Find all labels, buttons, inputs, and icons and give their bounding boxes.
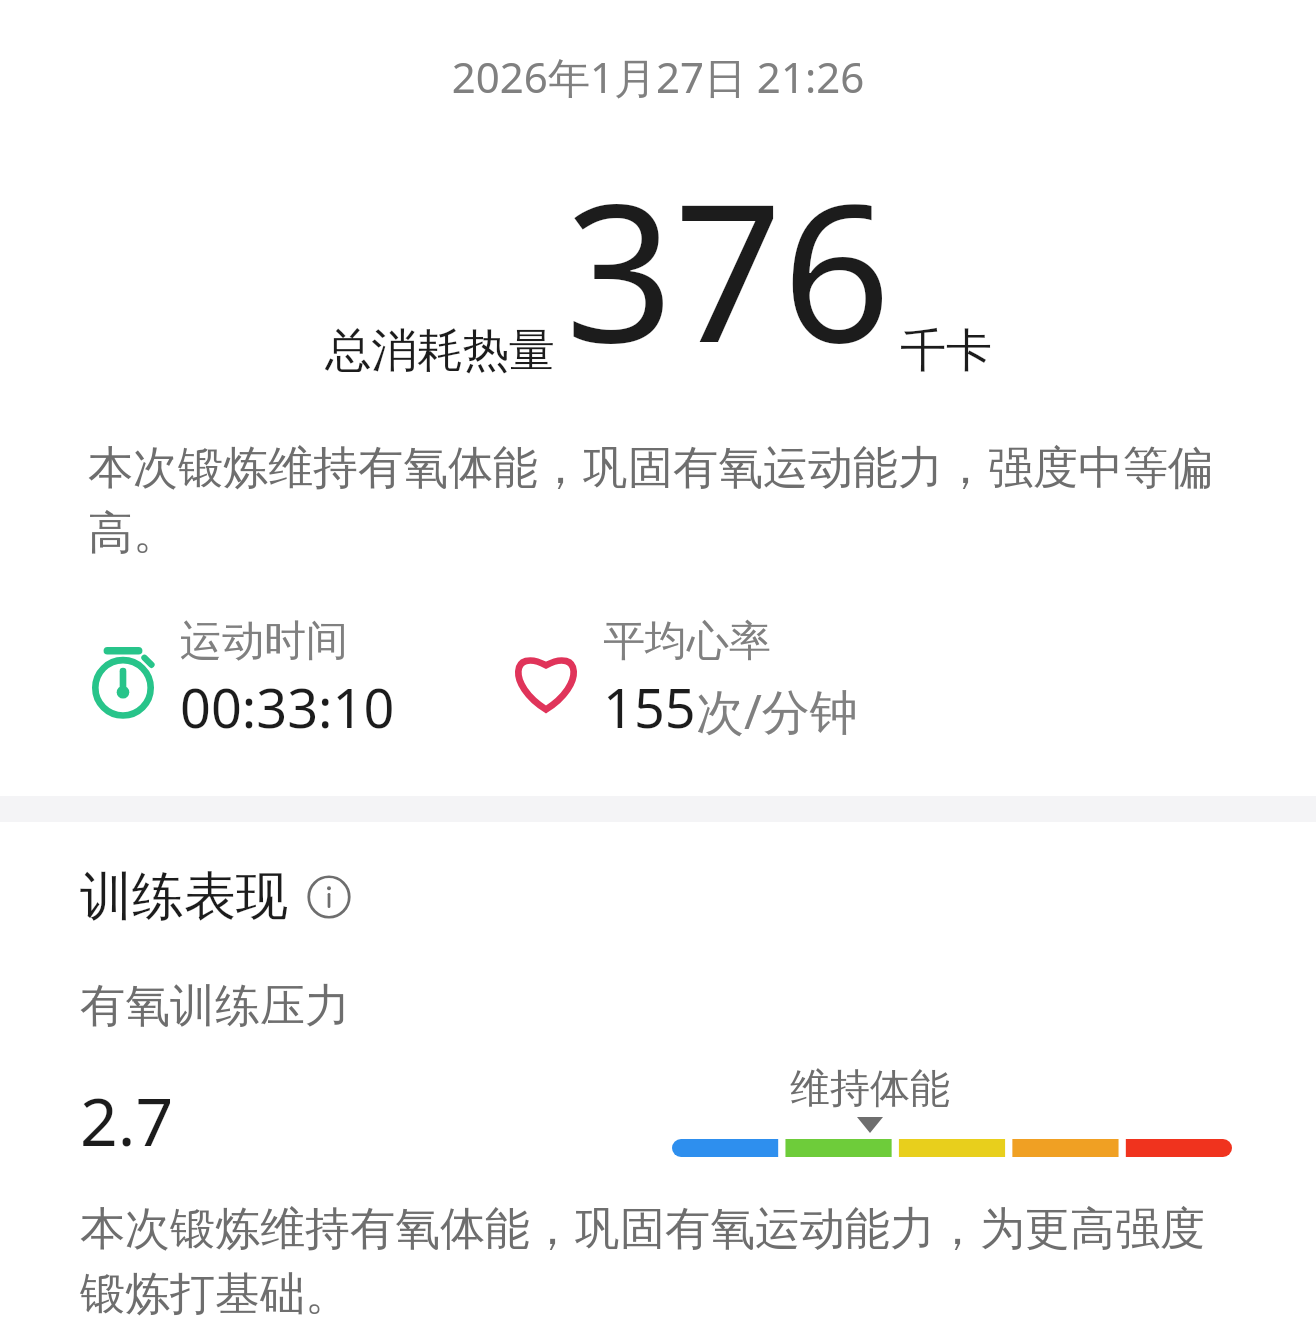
other: 关于训练表现 [306,874,352,920]
staticText: 155 [603,670,696,744]
staticText: 次/分钟 [696,678,858,744]
staticText: 总消耗热量 [325,322,555,380]
other: 平均心率 [505,639,587,721]
staticText: 维持体能 [790,1063,950,1113]
button[interactable]: 平均心率 [503,615,858,744]
staticText: 训练表现 [80,864,288,930]
staticText: 运动时间 [180,615,348,668]
staticText: 本次锻炼维持有氧体能，巩固有氧运动能力，强度中等偏高。 [88,440,1246,561]
staticText: 2026年1月27日 21:26 [0,48,1316,105]
staticText: 千卡 [900,322,992,380]
staticText: 2.7 [80,1075,174,1165]
staticText: 本次锻炼维持有氧体能，巩固有氧运动能力，为更高强度锻炼打基础。 [80,1201,1246,1322]
button[interactable]: 运动时间 [80,615,395,744]
staticText: 376 [565,139,892,398]
staticText: 平均心率 [603,615,771,668]
button[interactable]: 训练表现 [80,864,352,930]
other: 运动时间 [84,641,162,719]
staticText: 有氧训练压力 [80,978,350,1035]
staticText: 00:33:10 [180,670,395,744]
